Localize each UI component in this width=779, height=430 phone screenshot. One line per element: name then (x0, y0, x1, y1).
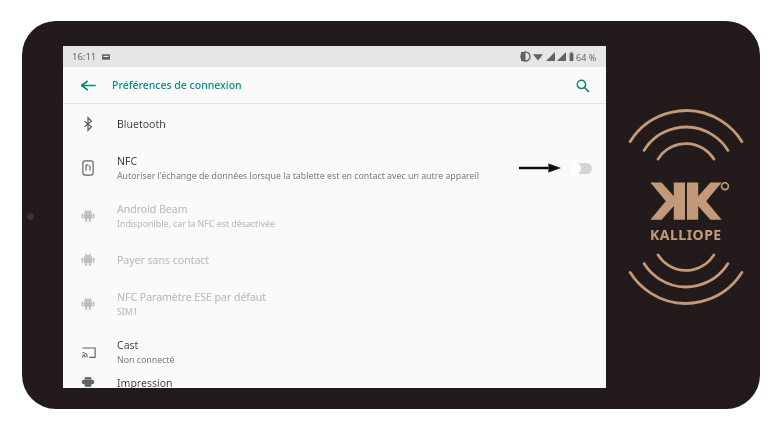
staticText: Impression (117, 376, 173, 388)
staticText: Préférences de connexion (112, 78, 242, 92)
staticText: NFC (117, 154, 138, 168)
button[interactable]: Android Beam (63, 192, 606, 240)
button[interactable]: Payer sans contact (63, 240, 606, 280)
staticText: Non connecté (117, 354, 175, 366)
staticText: Payer sans contact (117, 253, 210, 267)
staticText: Indisponible, car la NFC est désactivée (117, 218, 275, 230)
button[interactable]: NFC toggle (568, 162, 592, 175)
staticText: NFC Paramètre ESE par défaut (117, 290, 267, 304)
staticText: 64 % (576, 51, 597, 63)
staticText: KALLIOPE (650, 225, 722, 244)
button[interactable]: Bluetooth (63, 104, 606, 144)
button[interactable]: Impression (63, 376, 606, 388)
staticText: Autoriser l'échange de données lorsque l… (117, 170, 480, 182)
button[interactable]: Cast (63, 328, 606, 376)
button[interactable]: NFC Paramètre ESE par défaut (63, 280, 606, 328)
staticText: 16:11 (72, 50, 97, 63)
button[interactable]: NFC (63, 144, 606, 192)
staticText: Bluetooth (117, 117, 166, 131)
staticText: SIM1 (117, 306, 138, 318)
button[interactable]: Search (570, 73, 594, 97)
staticText: Android Beam (117, 202, 188, 216)
button[interactable]: Back (75, 73, 99, 97)
staticText: Cast (117, 338, 139, 352)
